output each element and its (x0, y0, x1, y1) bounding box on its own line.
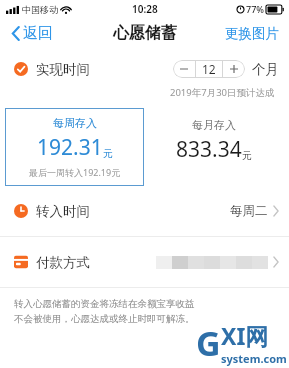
staticText: 每月存入 (192, 118, 236, 132)
staticText: 不会被使用，心愿达成或终止时即可解冻。 (14, 313, 195, 325)
staticText: 转入时间 (36, 203, 90, 220)
staticText: 返回 (23, 24, 53, 43)
staticText: 每周存入 (53, 116, 97, 130)
button[interactable]: 每周存入 (5, 108, 144, 186)
button[interactable]: 每月存入 (144, 108, 284, 186)
staticText: 付款方式 (36, 254, 90, 271)
staticText: 每周二 (230, 203, 268, 219)
staticText: 10:28 (132, 2, 158, 16)
staticText: 转入心愿储蓄的资金将冻结在余额宝享收益 (14, 298, 195, 310)
button[interactable]: Increase months (223, 60, 245, 78)
button[interactable]: Decrease months (173, 60, 195, 78)
staticText: 更换图片 (225, 25, 279, 42)
staticText: 元 (103, 147, 113, 160)
staticText: 元 (242, 149, 252, 162)
staticText: 833.34 (176, 135, 242, 164)
button[interactable]: 付款方式 (0, 237, 289, 287)
staticText: system.com (221, 351, 287, 366)
staticText: 2019年7月30日预计达成 (170, 86, 275, 99)
staticText: 中国移动 (22, 4, 58, 15)
staticText: G (196, 320, 221, 366)
staticText: 192.31 (37, 133, 103, 162)
staticText: 77% (246, 3, 264, 15)
staticText: 12 (202, 61, 216, 77)
staticText: XI网 (221, 320, 269, 351)
staticText: 心愿储蓄 (113, 23, 177, 43)
staticText: 实现时间 (36, 61, 90, 78)
button[interactable]: 更换图片 (215, 20, 289, 47)
button[interactable]: 转入时间 (0, 186, 289, 236)
staticText: 最后一周转入192.19元 (29, 166, 121, 178)
button[interactable]: 返回 (0, 20, 63, 47)
staticText: 个月 (252, 61, 279, 78)
